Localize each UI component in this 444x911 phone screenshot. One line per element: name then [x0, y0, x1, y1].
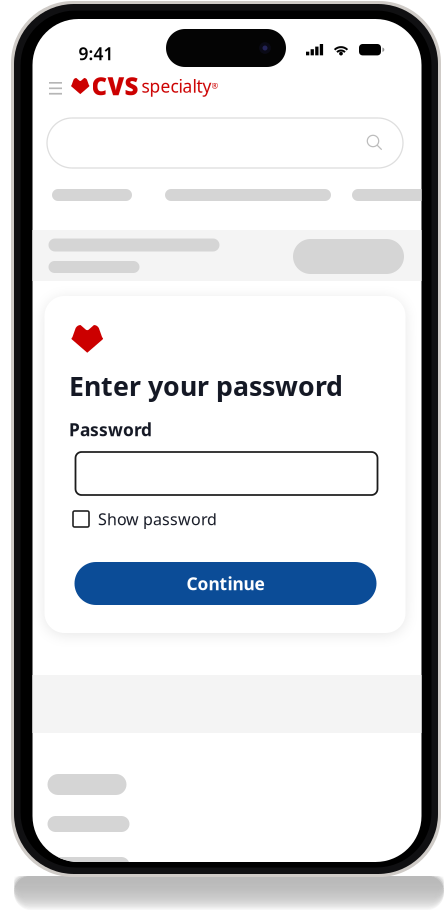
staticText: Enter your password — [69, 368, 343, 403]
staticText: 9:41 — [78, 42, 113, 65]
staticText: ® — [211, 81, 218, 91]
staticText: specialty — [141, 74, 211, 97]
button[interactable]: Continue — [74, 562, 376, 605]
staticText: Show password — [98, 508, 217, 530]
button[interactable]: Show password — [73, 508, 263, 530]
button[interactable]: CVS specialty — [70, 70, 218, 102]
staticText: CVS — [91, 70, 138, 102]
staticText: Continue — [186, 572, 264, 595]
button[interactable]: Search — [47, 118, 403, 168]
button[interactable]: Menu — [42, 75, 69, 101]
staticText: Password — [69, 418, 152, 441]
